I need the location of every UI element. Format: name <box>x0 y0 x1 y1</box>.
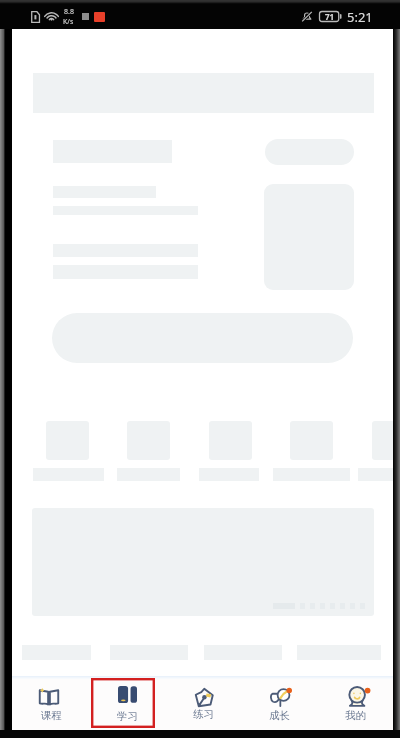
staticText: 成长 <box>269 709 290 722</box>
staticText: 课程 <box>41 709 62 722</box>
staticText: 学习 <box>117 710 138 723</box>
staticText: 练习 <box>193 708 214 721</box>
button[interactable]: 学习 <box>89 676 165 730</box>
button[interactable]: 成长 <box>241 676 317 730</box>
staticText: 71 <box>325 11 335 22</box>
button[interactable]: 课程 <box>12 676 89 730</box>
staticText: K/s <box>63 17 74 27</box>
button[interactable]: 练习 <box>165 676 241 730</box>
button[interactable]: 我的 <box>317 676 393 730</box>
staticText: 我的 <box>345 709 366 722</box>
staticText: 8.8 <box>64 7 74 17</box>
staticText: 5:21 <box>347 8 373 26</box>
